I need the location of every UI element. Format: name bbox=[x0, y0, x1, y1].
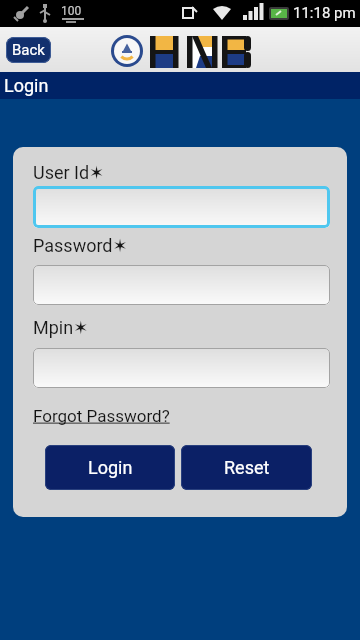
staticText: Reset bbox=[224, 457, 270, 478]
button[interactable]: Reset bbox=[181, 445, 312, 490]
button[interactable] bbox=[33, 186, 330, 228]
button[interactable] bbox=[33, 265, 330, 305]
staticText: Mpin✶ bbox=[33, 317, 89, 338]
staticText: Back bbox=[12, 41, 45, 59]
button[interactable] bbox=[33, 348, 330, 388]
staticText: Login bbox=[4, 75, 49, 96]
button[interactable]: Back bbox=[6, 37, 51, 63]
staticText: Password✶ bbox=[33, 235, 128, 256]
staticText: 100 bbox=[61, 4, 82, 18]
staticText: Login bbox=[88, 457, 133, 478]
staticText: Forgot Password? bbox=[33, 406, 170, 426]
staticText: 11:18 pm bbox=[293, 4, 356, 22]
button[interactable]: Login bbox=[45, 445, 175, 490]
staticText: User Id✶ bbox=[33, 162, 105, 183]
button[interactable]: Forgot Password? bbox=[33, 409, 170, 430]
